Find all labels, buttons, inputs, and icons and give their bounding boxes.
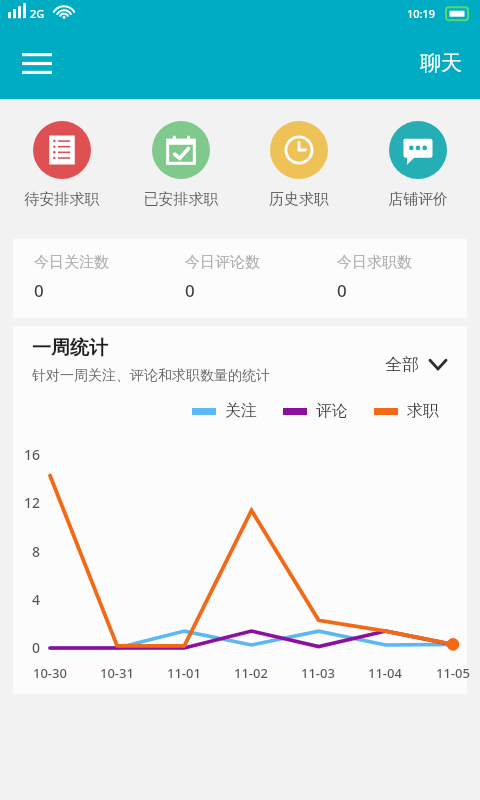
staticText: 已安排求职	[125, 190, 237, 209]
button[interactable]: 聊天	[410, 42, 472, 84]
staticText: 4	[32, 590, 41, 609]
staticText: 历史求职	[243, 190, 355, 209]
button[interactable]: 已安排求职	[125, 121, 237, 209]
staticText: 11-02	[234, 664, 268, 682]
staticText: 今日评论数	[185, 253, 260, 272]
staticText: 12	[24, 493, 41, 512]
staticText: 0	[337, 279, 347, 302]
staticText: 全部	[385, 354, 419, 375]
staticText: 11-05	[436, 664, 470, 682]
staticText: 店铺评价	[362, 190, 474, 209]
staticText: 评论	[316, 401, 348, 421]
staticText: 11-04	[368, 664, 402, 682]
staticText: 关注	[225, 401, 257, 421]
staticText: 今日求职数	[337, 253, 412, 272]
staticText: 今日关注数	[34, 253, 109, 272]
staticText: 10:19	[407, 6, 436, 21]
button[interactable]: 历史求职	[243, 121, 355, 209]
staticText: 10-31	[100, 664, 134, 682]
staticText: 16	[24, 445, 41, 464]
staticText: 0	[34, 279, 44, 302]
staticText: 一周统计	[32, 336, 108, 360]
button[interactable]: 评论	[283, 401, 348, 421]
staticText: 0	[32, 638, 41, 657]
staticText: 针对一周关注、评论和求职数量的统计	[32, 367, 270, 385]
button[interactable]: Menu	[10, 36, 64, 90]
staticText: 聊天	[420, 50, 462, 76]
staticText: 2G	[30, 6, 45, 21]
button[interactable]: 店铺评价	[362, 121, 474, 209]
staticText: 10-30	[33, 664, 67, 682]
staticText: 求职	[407, 401, 439, 421]
button[interactable]: 求职	[374, 401, 439, 421]
staticText: 待安排求职	[6, 190, 118, 209]
button[interactable]: 待安排求职	[6, 121, 118, 209]
staticText: 8	[32, 542, 41, 561]
staticText: 11-01	[167, 664, 201, 682]
button[interactable]: 全部	[385, 354, 447, 375]
staticText: 0	[185, 279, 195, 302]
button[interactable]: 关注	[192, 401, 257, 421]
staticText: 11-03	[301, 664, 335, 682]
